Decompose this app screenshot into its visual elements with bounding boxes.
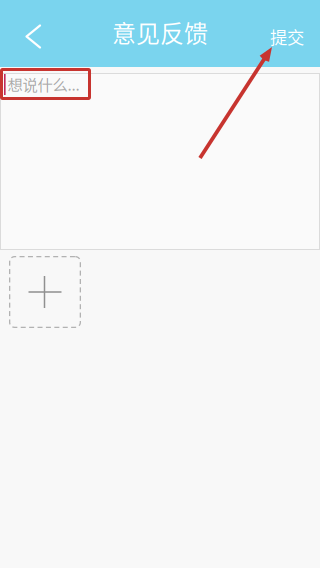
staticText: 想说什么... <box>8 73 80 95</box>
button[interactable]: 想说什么... <box>0 73 320 250</box>
button[interactable]: Add photo <box>9 256 81 328</box>
button[interactable]: 提交 <box>255 0 320 67</box>
staticText: 提交 <box>270 24 304 49</box>
button[interactable]: Back <box>0 0 66 67</box>
staticText: 意见反馈 <box>112 15 208 49</box>
